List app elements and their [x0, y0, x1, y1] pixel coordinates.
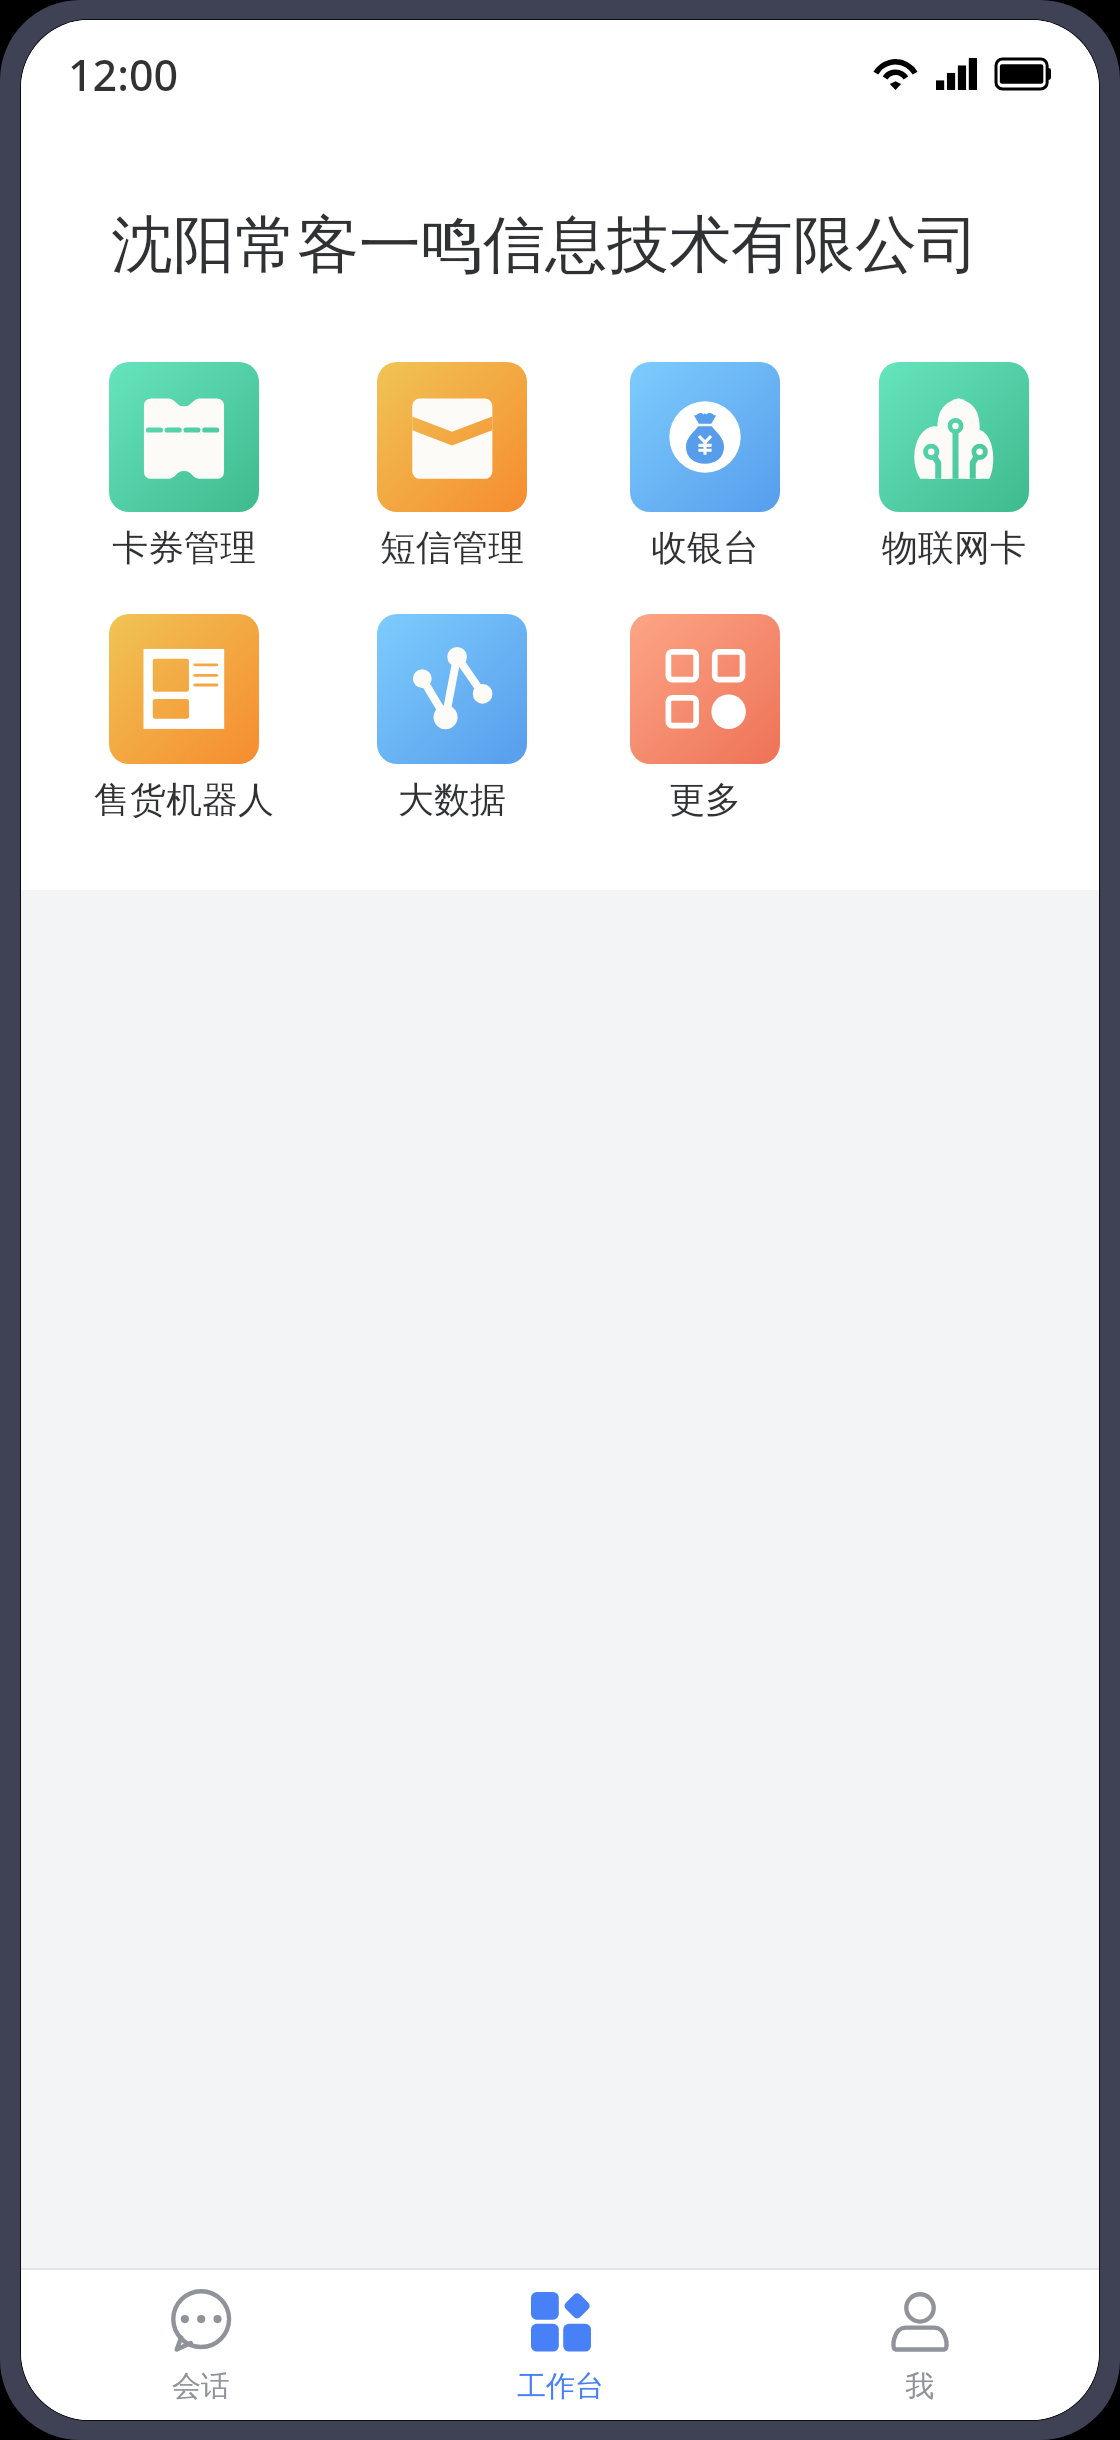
button[interactable]: 物联网卡: [839, 362, 1069, 570]
button[interactable]: 会话: [21, 2286, 381, 2405]
button[interactable]: 售货机器人: [69, 614, 299, 822]
button[interactable]: 卡券管理: [69, 362, 299, 570]
staticText: 收银台: [651, 525, 759, 570]
button[interactable]: 收银台: [590, 362, 820, 570]
button[interactable]: 工作台: [381, 2286, 740, 2405]
staticText: 12:00: [68, 45, 179, 104]
staticText: 卡券管理: [112, 525, 256, 570]
staticText: 物联网卡: [882, 525, 1026, 570]
staticText: 更多: [669, 777, 741, 822]
button[interactable]: 短信管理: [337, 362, 567, 570]
staticText: 大数据: [398, 777, 506, 822]
staticText: 售货机器人: [94, 777, 274, 822]
staticText: 会话: [172, 2368, 230, 2405]
staticText: 工作台: [517, 2368, 604, 2405]
button[interactable]: 更多: [590, 614, 820, 822]
button[interactable]: 我: [740, 2286, 1099, 2405]
staticText: 我: [905, 2368, 934, 2405]
button[interactable]: 大数据: [337, 614, 567, 822]
staticText: 沈阳常客一鸣信息技术有限公司: [111, 206, 979, 284]
staticText: 短信管理: [380, 525, 524, 570]
